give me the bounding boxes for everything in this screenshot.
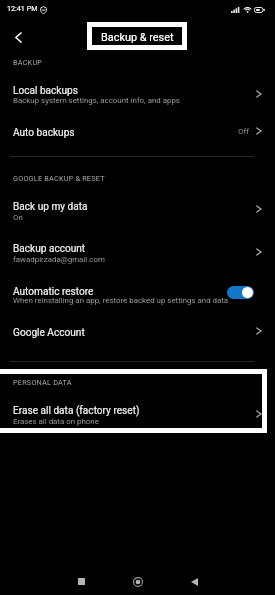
button[interactable] xyxy=(0,277,275,311)
button[interactable]: Home xyxy=(124,568,152,595)
staticText: Auto backups xyxy=(13,127,75,139)
staticText: Backup account xyxy=(13,243,86,255)
button[interactable] xyxy=(0,76,275,110)
button[interactable]: Navigate up xyxy=(4,23,32,51)
button[interactable]: Recent apps xyxy=(67,567,95,595)
staticText: Local backups xyxy=(13,85,78,97)
button[interactable] xyxy=(0,318,275,346)
staticText: GOOGLE BACKUP & RESET xyxy=(13,174,105,183)
staticText: When reinstalling an app, restore backed… xyxy=(13,296,229,305)
button[interactable] xyxy=(0,396,275,428)
button[interactable] xyxy=(0,234,275,268)
staticText: Backup system settings, account info, an… xyxy=(13,96,180,105)
staticText: Erases all data on phone xyxy=(13,417,99,426)
staticText: BACKUP xyxy=(13,58,43,67)
staticText: Back up my data xyxy=(13,201,88,213)
staticText: Automatic restore xyxy=(13,286,94,298)
button[interactable]: Toggle automatic restore xyxy=(227,286,254,299)
staticText: Erase all data (factory reset) xyxy=(13,405,140,417)
staticText: fawadpirzada@gmail.com xyxy=(13,255,105,264)
staticText: Backup & reset xyxy=(101,31,174,44)
button[interactable]: Back xyxy=(180,568,208,595)
staticText: 12:41 PM xyxy=(7,4,38,12)
button[interactable] xyxy=(0,192,275,226)
button[interactable] xyxy=(0,118,275,146)
staticText: Off xyxy=(238,127,249,136)
staticText: On xyxy=(13,213,23,222)
staticText: Google Account xyxy=(13,327,85,339)
button[interactable]: Backup & reset xyxy=(92,27,182,45)
staticText: PERSONAL DATA xyxy=(13,378,72,387)
